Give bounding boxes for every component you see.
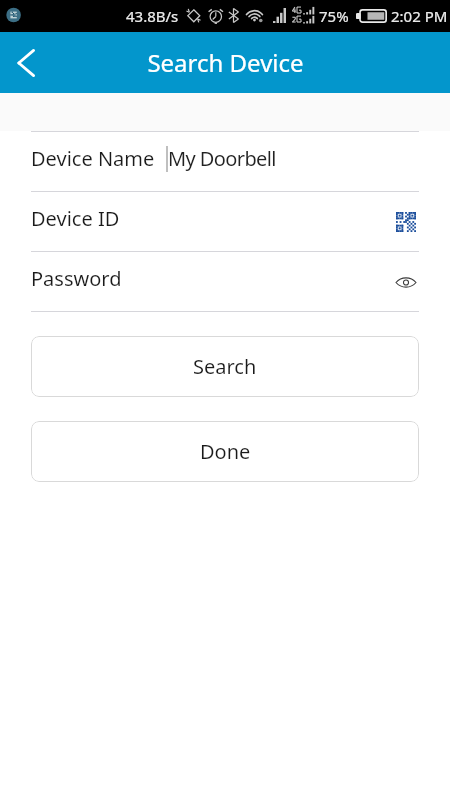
staticText: 43.8B/s bbox=[126, 6, 179, 26]
button[interactable]: Scan QR code bbox=[393, 209, 419, 235]
button[interactable]: Device ID bbox=[31, 192, 419, 251]
staticText: Search Device bbox=[147, 46, 304, 79]
button[interactable]: Search bbox=[31, 336, 419, 397]
staticText: Search bbox=[193, 353, 257, 380]
button[interactable]: Done bbox=[31, 421, 419, 482]
button[interactable]: Device Name bbox=[31, 132, 419, 191]
button[interactable]: Password bbox=[31, 252, 419, 311]
staticText: Password bbox=[31, 265, 122, 292]
button[interactable]: Back bbox=[0, 37, 52, 89]
button[interactable]: Show password bbox=[393, 269, 419, 295]
staticText: 2:02 PM bbox=[391, 6, 448, 26]
staticText: Device Name bbox=[31, 145, 155, 172]
staticText: Done bbox=[200, 438, 251, 465]
staticText: My Doorbell bbox=[168, 145, 276, 172]
staticText: Device ID bbox=[31, 205, 120, 232]
staticText: 75% bbox=[319, 6, 349, 26]
